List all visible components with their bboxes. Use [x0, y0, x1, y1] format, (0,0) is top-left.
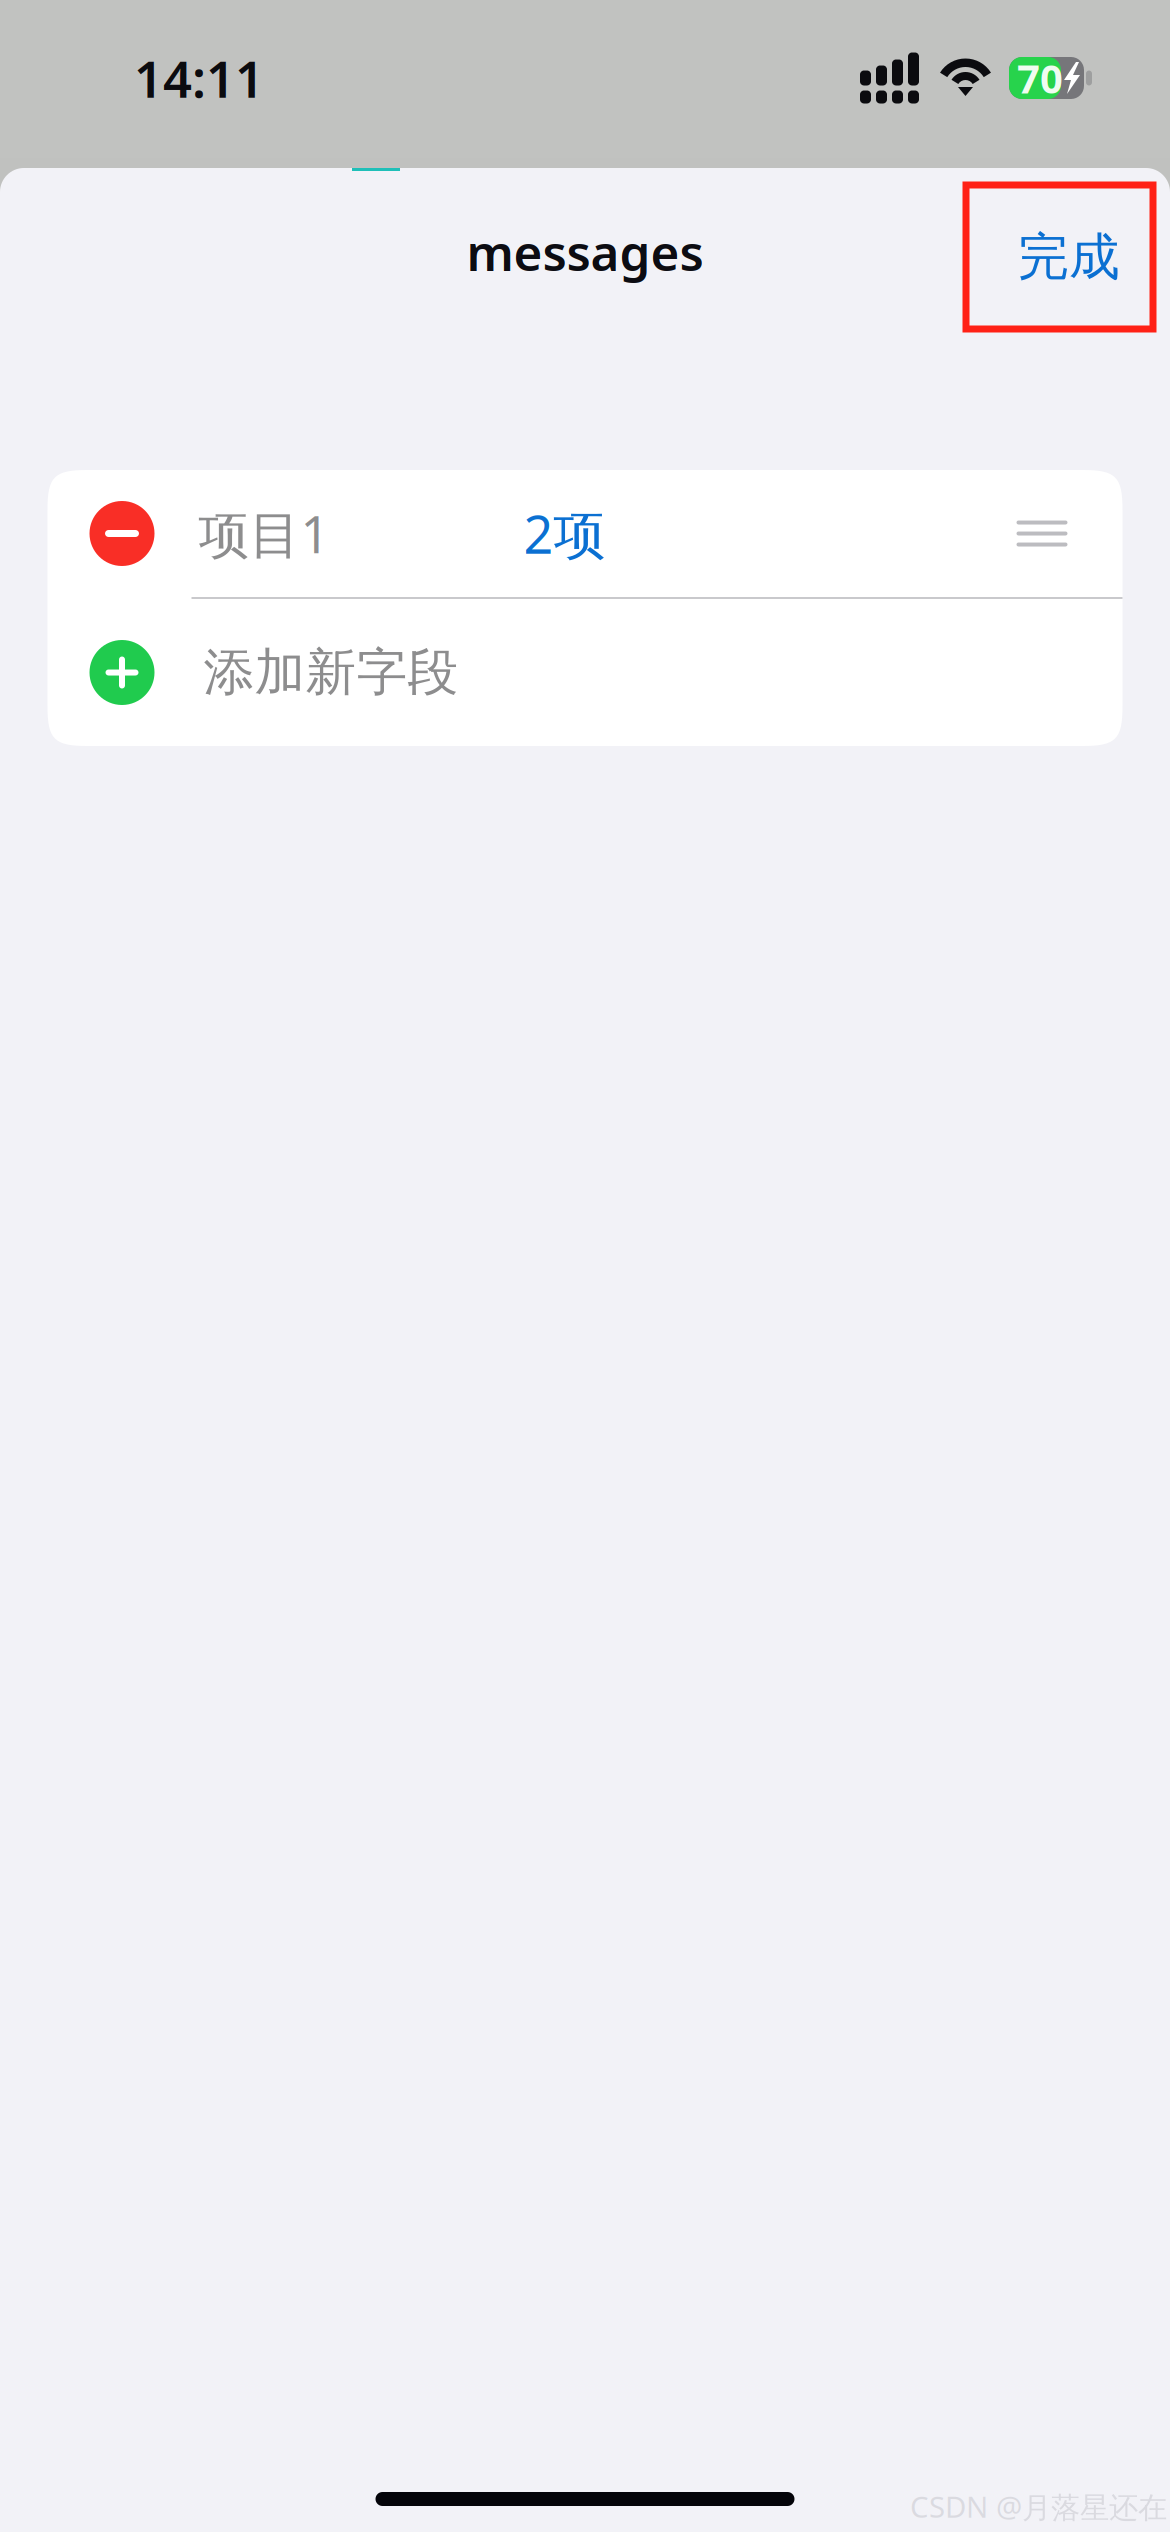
button[interactable]: Remove 项目1	[47, 470, 154, 597]
staticText: 70	[1017, 51, 1063, 104]
staticText: messages	[466, 219, 703, 284]
button[interactable]: 添加新字段	[47, 599, 1122, 746]
staticText: 2项	[523, 499, 605, 568]
staticText: CSDN @月落星还在	[910, 2487, 1167, 2526]
staticText: 项目1	[198, 500, 329, 567]
staticText: 14:11	[134, 44, 264, 112]
staticText: 添加新字段	[203, 641, 458, 704]
staticText: 完成	[1018, 226, 1120, 288]
button[interactable]: 完成	[966, 185, 1153, 329]
button[interactable]: Reorder	[1016, 470, 1122, 597]
button[interactable]: 2项	[523, 470, 723, 597]
